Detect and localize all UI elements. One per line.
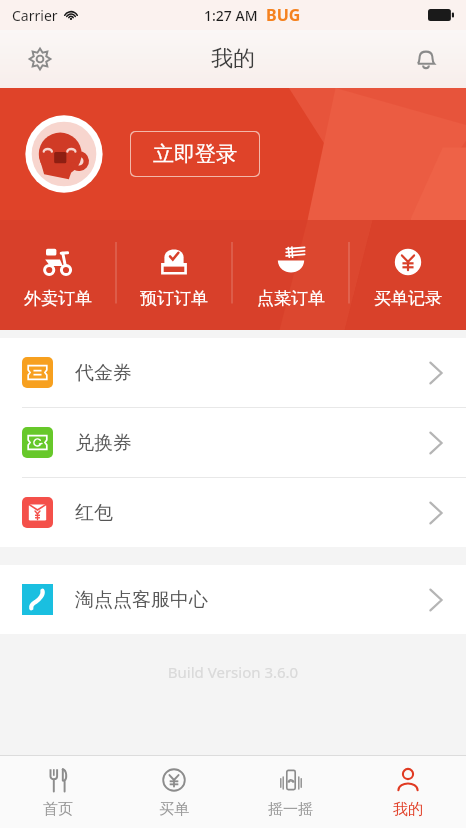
button[interactable]: 点菜订单 [232,220,349,330]
button[interactable]: Notifications [404,37,448,81]
button[interactable]: 外卖订单 [0,220,116,330]
staticText: 点菜订单 [257,288,325,309]
staticText: 1:27 AM [204,6,258,25]
button[interactable]: 红包 [0,478,466,547]
button[interactable]: Avatar [22,112,106,196]
button[interactable]: Settings [18,37,62,81]
staticText: Carrier [12,6,58,25]
staticText: 首页 [43,800,73,819]
staticText: BUG [266,4,301,26]
button[interactable]: 摇一摇 [232,756,349,828]
staticText: 我的 [393,800,423,819]
staticText: 淘点点客服中心 [75,588,208,612]
staticText: 买单 [159,800,189,819]
staticText: 买单记录 [374,288,442,309]
staticText: 代金券 [75,361,132,385]
button[interactable]: 买单记录 [349,220,466,330]
button[interactable]: 买单 [116,756,232,828]
staticText: 兑换券 [75,431,132,455]
staticText: 摇一摇 [268,800,313,819]
button[interactable]: 我的 [349,756,466,828]
staticText: Build Version 3.6.0 [0,662,466,682]
button[interactable]: 代金券 [0,338,466,407]
button[interactable]: 立即登录 [130,131,260,177]
staticText: 红包 [75,501,113,525]
staticText: 立即登录 [153,141,237,167]
button[interactable]: 淘点点客服中心 [0,565,466,634]
button[interactable]: 预订订单 [116,220,232,330]
staticText: 我的 [211,45,255,73]
button[interactable]: 兑换券 [0,408,466,477]
button[interactable]: 首页 [0,756,116,828]
staticText: 外卖订单 [24,288,92,309]
staticText: 预订订单 [140,288,208,309]
